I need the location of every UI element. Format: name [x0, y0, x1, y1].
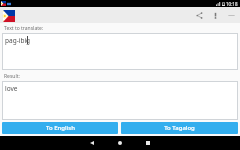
button[interactable]: Share — [193, 9, 205, 21]
button[interactable]: To Tagalog — [121, 122, 238, 134]
button[interactable]: To English — [2, 122, 118, 134]
staticText: love — [5, 84, 18, 93]
button[interactable]: Back — [84, 136, 100, 150]
staticText: pag-ibig — [5, 36, 31, 45]
staticText: 10:18 — [226, 1, 238, 7]
button[interactable]: pag-ibig — [2, 33, 238, 70]
staticText: Result: — [4, 73, 20, 80]
button[interactable]: Recent apps — [140, 136, 156, 150]
staticText: Text to translate: — [4, 25, 44, 32]
staticText: To Tagalog — [164, 124, 195, 132]
button[interactable]: Info — [209, 9, 221, 21]
button[interactable]: Home — [112, 136, 128, 150]
button[interactable]: App icon — [2, 9, 15, 22]
button[interactable]: More options — [225, 9, 237, 21]
staticText: To English — [46, 124, 75, 132]
button[interactable]: love — [2, 81, 238, 120]
